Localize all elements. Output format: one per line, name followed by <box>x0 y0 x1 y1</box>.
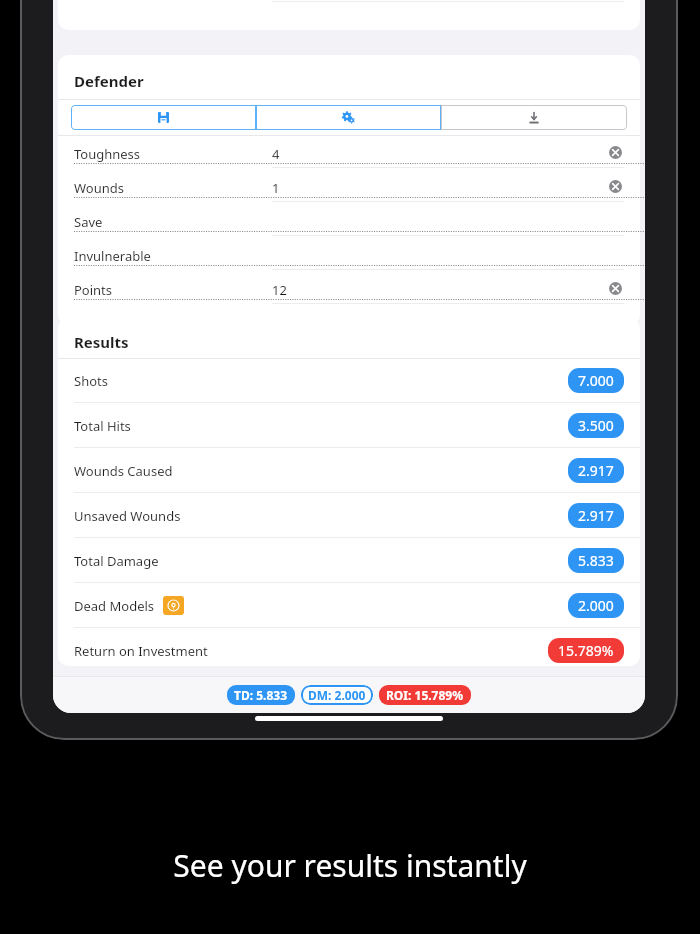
button[interactable]: Points <box>58 0 640 4</box>
staticText: 15.789% <box>558 641 614 660</box>
button[interactable]: Toughness <box>58 136 640 170</box>
button[interactable]: 2.000 <box>568 593 624 618</box>
staticText: Points <box>74 281 113 299</box>
staticText: 2.917 <box>578 461 614 480</box>
staticText: 4 <box>272 145 280 163</box>
staticText: Return on Investment <box>74 642 208 660</box>
staticText: 2.000 <box>578 596 614 615</box>
button[interactable]: Wounds <box>58 170 640 204</box>
button[interactable]: Clear <box>609 180 622 193</box>
button[interactable]: Total Hits <box>58 403 640 448</box>
button[interactable]: Clear <box>609 146 622 159</box>
staticText: 12 <box>272 281 287 299</box>
button[interactable]: 2.917 <box>568 458 624 483</box>
button[interactable]: ROI: 15.789% <box>379 685 471 705</box>
button[interactable]: Clear <box>609 282 622 295</box>
staticText: Toughness <box>74 145 141 163</box>
button[interactable]: 15.789% <box>548 638 624 663</box>
staticText: Results <box>74 332 129 352</box>
button[interactable]: Dead Models <box>58 583 640 628</box>
staticText: Unsaved Wounds <box>74 507 181 525</box>
staticText: Wounds <box>74 179 124 197</box>
staticText: Defender <box>74 71 144 91</box>
button[interactable]: 5.833 <box>568 548 624 573</box>
button[interactable]: Help <box>163 596 184 615</box>
staticText: Shots <box>74 372 108 390</box>
button[interactable]: 3.500 <box>568 413 624 438</box>
button[interactable]: DM: 2.000 <box>301 685 373 705</box>
button[interactable]: Download <box>441 105 627 130</box>
staticText: 5.833 <box>578 551 614 570</box>
button[interactable]: Total Damage <box>58 538 640 583</box>
staticText: DM: 2.000 <box>308 687 366 703</box>
button[interactable]: 7.000 <box>568 368 624 393</box>
button[interactable]: Return on Investment <box>58 628 640 673</box>
staticText: 7.000 <box>578 371 614 390</box>
staticText: See your results instantly <box>173 845 527 886</box>
staticText: Dead Models <box>74 597 155 615</box>
button[interactable]: Save <box>71 105 256 130</box>
staticText: Save <box>74 213 103 231</box>
button[interactable]: Save <box>58 204 640 238</box>
button[interactable]: Unsaved Wounds <box>58 493 640 538</box>
button[interactable]: 2.917 <box>568 503 624 528</box>
button[interactable]: Shots <box>58 358 640 403</box>
staticText: TD: 5.833 <box>234 687 288 703</box>
button[interactable]: TD: 5.833 <box>227 685 295 705</box>
staticText: ROI: 15.789% <box>386 687 464 703</box>
staticText: Total Damage <box>74 552 159 570</box>
staticText: Total Hits <box>74 417 131 435</box>
staticText: Invulnerable <box>74 247 151 265</box>
button[interactable]: Points <box>58 272 640 306</box>
button[interactable]: Invulnerable <box>58 238 640 272</box>
staticText: 1 <box>272 179 280 197</box>
staticText: Wounds Caused <box>74 462 173 480</box>
button[interactable]: Settings <box>256 105 441 130</box>
staticText: 3.500 <box>578 416 614 435</box>
button[interactable]: Wounds Caused <box>58 448 640 493</box>
staticText: 2.917 <box>578 506 614 525</box>
